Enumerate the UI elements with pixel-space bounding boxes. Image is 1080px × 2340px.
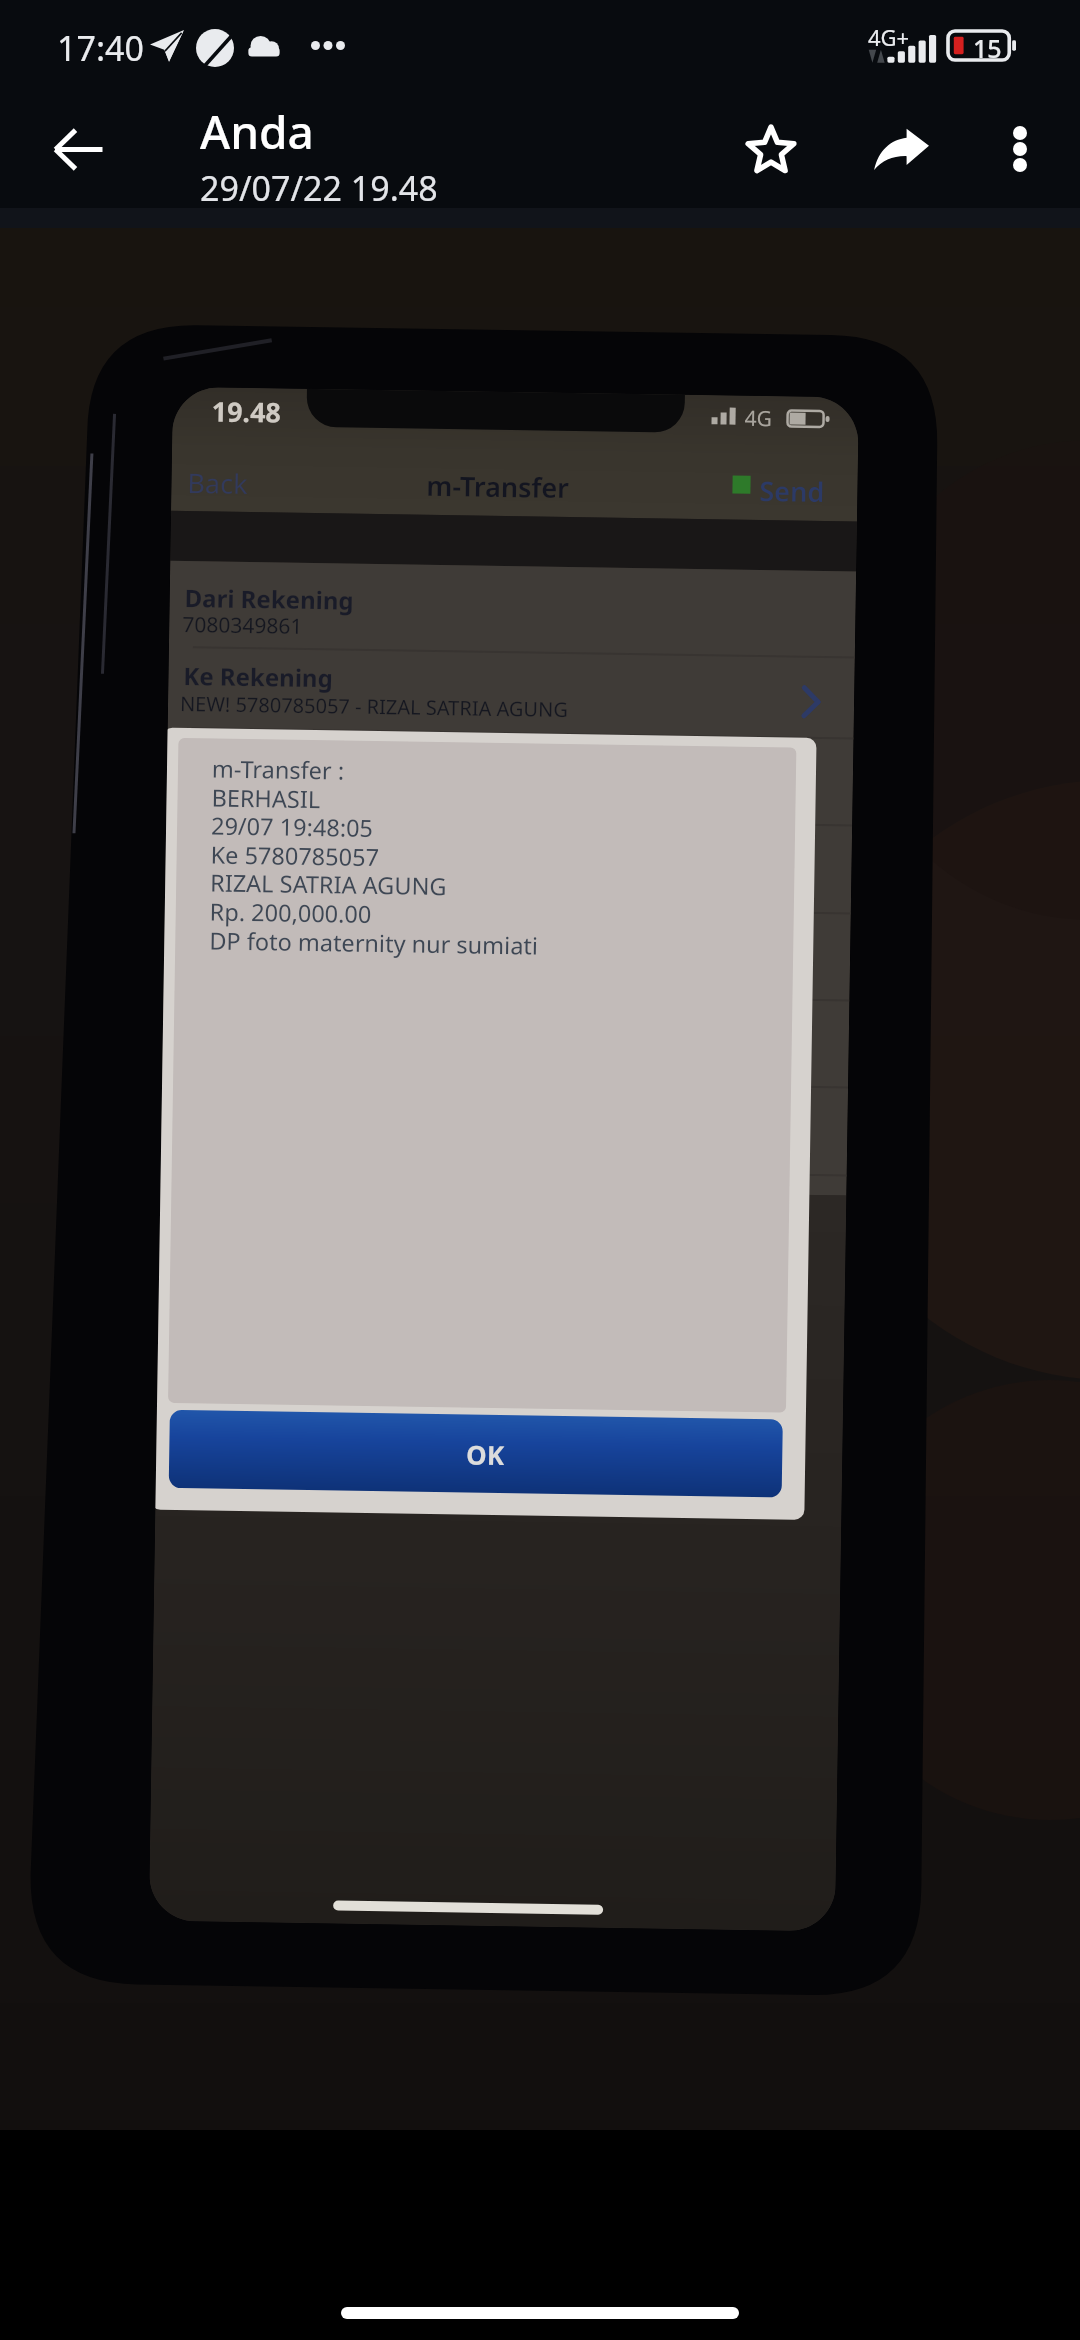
staticText: m-Transfer: [426, 467, 570, 506]
staticText: Ke Rekening: [183, 659, 334, 694]
staticText: 15: [973, 31, 1002, 60]
button[interactable]: Star: [711, 90, 831, 208]
staticText: 29/07 19:48:05: [211, 809, 373, 844]
staticText: Send: [759, 472, 825, 510]
staticText: 29/07/22 19.48: [200, 165, 438, 211]
staticText: m-Transfer :: [212, 752, 345, 786]
staticText: DP foto maternity nur sumiati: [209, 924, 538, 962]
staticText: Dari Rekening: [184, 581, 354, 617]
staticText: RIZAL SATRIA AGUNG: [210, 866, 447, 902]
staticText: Anda: [200, 100, 314, 163]
staticText: 7080349861: [182, 610, 303, 641]
staticText: Rp. 200,000.00: [209, 895, 372, 930]
staticText: OK: [466, 1436, 504, 1472]
staticText: Back: [187, 464, 249, 502]
button[interactable]: Back: [18, 90, 138, 208]
staticText: 19.48: [211, 392, 282, 430]
staticText: 4G: [744, 404, 773, 433]
button[interactable]: More options: [960, 90, 1080, 208]
button[interactable]: Share: [841, 90, 961, 208]
staticText: NEW! 5780785057 - RIZAL SATRIA AGUNG: [180, 690, 568, 723]
staticText: 4G+: [868, 22, 910, 52]
staticText: Ke 5780785057: [210, 838, 380, 873]
staticText: BERHASIL: [211, 781, 321, 815]
staticText: 17:40: [57, 25, 144, 71]
